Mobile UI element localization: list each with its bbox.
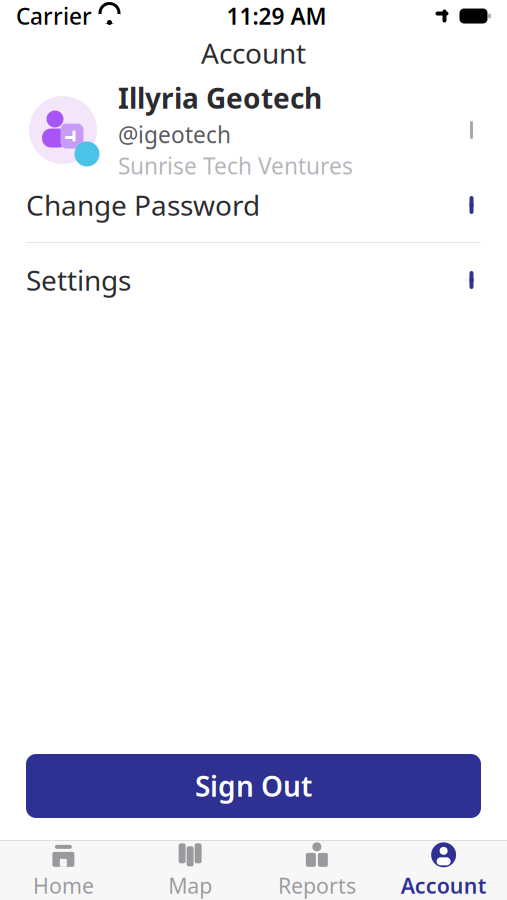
button[interactable]: Illyria Geotech <box>0 82 507 178</box>
button[interactable]: Reports <box>253 841 380 900</box>
button[interactable]: Account <box>380 841 507 900</box>
staticText: Account <box>401 871 487 900</box>
staticText: Sunrise Tech Ventures <box>118 151 353 181</box>
staticText: Carrier <box>16 1 92 31</box>
button[interactable]: Change Password <box>0 178 507 232</box>
staticText: @igeotech <box>118 119 231 150</box>
staticText: 11:29 AM <box>226 1 326 31</box>
button[interactable]: Home <box>0 841 127 900</box>
button[interactable]: Settings <box>0 253 507 307</box>
staticText: Home <box>33 871 94 900</box>
button[interactable]: Map <box>127 841 254 900</box>
staticText: Map <box>168 871 212 900</box>
staticText: Change Password <box>26 186 260 224</box>
staticText: Reports <box>278 871 356 900</box>
staticText: Illyria Geotech <box>118 79 322 116</box>
staticText: Account <box>201 34 306 72</box>
button[interactable]: Sign Out <box>26 754 481 818</box>
staticText: Settings <box>26 261 131 299</box>
staticText: Sign Out <box>195 767 312 805</box>
